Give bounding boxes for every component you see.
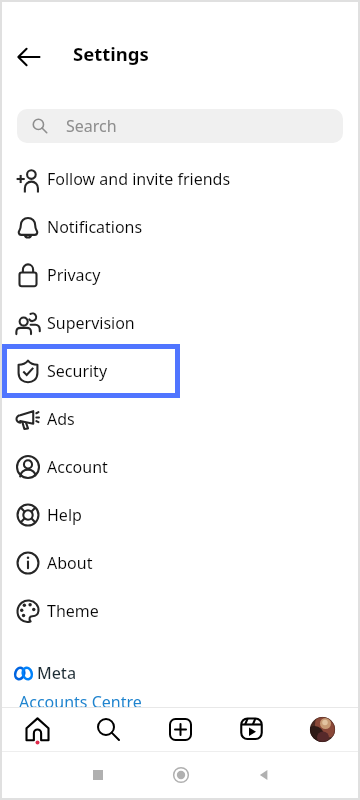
button[interactable]: About bbox=[2, 539, 358, 587]
button[interactable]: Follow and invite friends bbox=[2, 155, 358, 203]
staticText: Supervision bbox=[47, 312, 135, 334]
button[interactable]: Home bbox=[16, 708, 59, 751]
staticText: Privacy bbox=[47, 264, 101, 286]
button[interactable]: Recents bbox=[56, 752, 139, 798]
staticText: Account bbox=[47, 456, 108, 478]
button[interactable]: Create bbox=[159, 708, 202, 751]
button[interactable]: Search bbox=[87, 708, 130, 751]
staticText: Settings bbox=[73, 41, 149, 66]
staticText: Follow and invite friends bbox=[47, 168, 231, 190]
button[interactable]: Account bbox=[2, 443, 358, 491]
staticText: Help bbox=[47, 504, 82, 526]
staticText: Search bbox=[66, 115, 117, 137]
staticText: Theme bbox=[47, 600, 99, 622]
button[interactable]: Back bbox=[7, 35, 51, 79]
button[interactable]: Privacy bbox=[2, 251, 358, 299]
staticText: Notifications bbox=[47, 216, 143, 238]
button[interactable]: Theme bbox=[2, 587, 358, 635]
staticText: Meta bbox=[37, 662, 77, 684]
button[interactable]: Search bbox=[17, 109, 343, 143]
button[interactable]: Reels bbox=[230, 708, 273, 751]
button[interactable]: Profile bbox=[301, 708, 344, 751]
button[interactable]: Notifications bbox=[2, 203, 358, 251]
button[interactable]: Supervision bbox=[2, 299, 358, 347]
button[interactable]: Ads bbox=[2, 395, 358, 443]
button[interactable]: Home bbox=[139, 752, 222, 798]
staticText: Accounts Centre bbox=[19, 691, 142, 713]
button[interactable]: Back bbox=[222, 752, 305, 798]
staticText: About bbox=[47, 552, 93, 574]
button[interactable]: Help bbox=[2, 491, 358, 539]
button[interactable]: Security bbox=[2, 347, 358, 395]
staticText: Security bbox=[47, 360, 108, 382]
staticText: Ads bbox=[47, 408, 75, 430]
